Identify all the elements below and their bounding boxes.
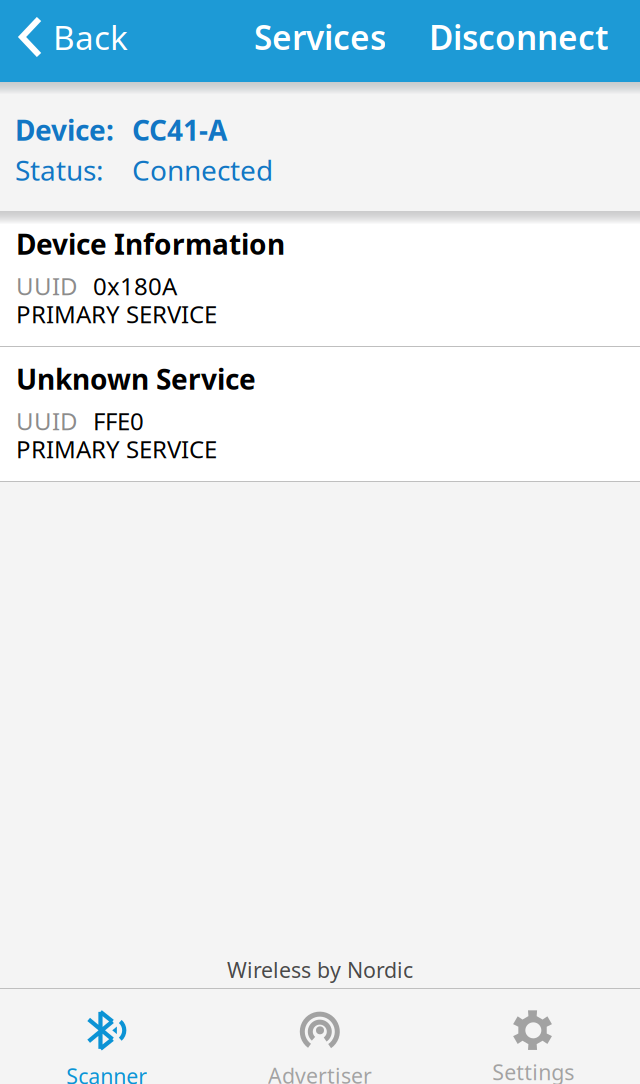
button[interactable]: Back xyxy=(0,0,138,74)
staticText: Device: xyxy=(15,111,114,149)
staticText: Connected xyxy=(132,151,273,189)
button[interactable]: Disconnect xyxy=(419,0,640,74)
button[interactable]: Unknown Service xyxy=(0,347,640,481)
staticText: Scanner xyxy=(66,1062,147,1084)
staticText: Back xyxy=(53,15,128,59)
button[interactable]: Advertiser xyxy=(213,989,427,1084)
staticText: Disconnect xyxy=(429,15,609,59)
staticText: Unknown Service xyxy=(16,360,256,398)
staticText: PRIMARY SERVICE xyxy=(16,433,217,465)
staticText: UUID xyxy=(16,405,78,437)
staticText: CC41-A xyxy=(132,111,227,149)
staticText: 0x180A xyxy=(93,270,177,302)
staticText: Wireless by Nordic xyxy=(227,956,413,984)
button[interactable]: Device Information xyxy=(0,212,640,346)
staticText: Services xyxy=(254,15,386,59)
staticText: FFE0 xyxy=(93,405,144,437)
staticText: Status: xyxy=(15,151,104,189)
button[interactable]: Settings xyxy=(427,989,640,1084)
staticText: Device Information xyxy=(16,225,285,263)
staticText: Settings xyxy=(492,1058,574,1084)
staticText: Advertiser xyxy=(268,1061,372,1084)
button[interactable]: Scanner xyxy=(0,989,213,1084)
staticText: UUID xyxy=(16,270,78,302)
staticText: PRIMARY SERVICE xyxy=(16,298,217,330)
